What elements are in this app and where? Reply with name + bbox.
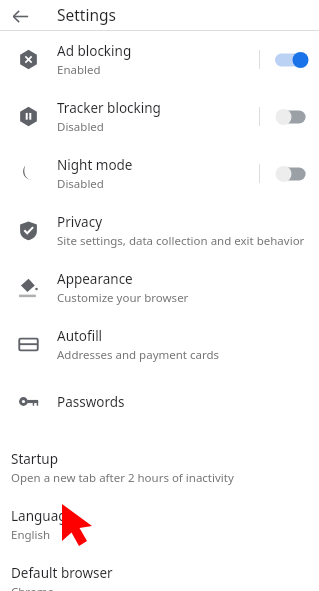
staticText: Privacy bbox=[57, 213, 103, 231]
button[interactable]: Privacy bbox=[0, 202, 319, 259]
staticText: Disabled bbox=[57, 176, 104, 192]
button[interactable]: Startup bbox=[0, 442, 319, 499]
staticText: Open a new tab after 2 hours of inactivi… bbox=[11, 470, 234, 486]
staticText: Tracker blocking bbox=[57, 99, 161, 117]
staticText: Chrome bbox=[11, 584, 55, 591]
button[interactable]: Back bbox=[8, 4, 32, 28]
staticText: Enabled bbox=[57, 62, 101, 78]
staticText: English bbox=[11, 527, 51, 543]
staticText: Ad blocking bbox=[57, 42, 132, 60]
staticText: Night mode bbox=[57, 156, 133, 174]
staticText: Autofill bbox=[57, 327, 103, 345]
staticText: Customize your browser bbox=[57, 290, 189, 306]
staticText: Appearance bbox=[57, 270, 133, 288]
staticText: Language bbox=[11, 507, 75, 525]
staticText: Disabled bbox=[57, 119, 104, 135]
staticText: Settings bbox=[57, 4, 116, 25]
button[interactable]: Ad blocking bbox=[0, 31, 319, 88]
button[interactable]: Default browser bbox=[0, 556, 319, 591]
button[interactable]: Night mode bbox=[0, 145, 319, 202]
button[interactable]: Passwords bbox=[0, 373, 319, 430]
button[interactable]: Language bbox=[0, 499, 319, 556]
button[interactable]: Tracker blocking toggle bbox=[257, 88, 319, 145]
staticText: Addresses and payment cards bbox=[57, 347, 220, 363]
button[interactable]: Autofill bbox=[0, 316, 319, 373]
button[interactable]: Appearance bbox=[0, 259, 319, 316]
button[interactable]: Night mode toggle bbox=[257, 145, 319, 202]
staticText: Site settings, data collection and exit … bbox=[57, 233, 305, 249]
staticText: Passwords bbox=[57, 393, 125, 411]
staticText: Default browser bbox=[11, 564, 113, 582]
button[interactable]: Ad blocking toggle bbox=[257, 31, 319, 88]
button[interactable]: Tracker blocking bbox=[0, 88, 319, 145]
staticText: Startup bbox=[11, 450, 58, 468]
